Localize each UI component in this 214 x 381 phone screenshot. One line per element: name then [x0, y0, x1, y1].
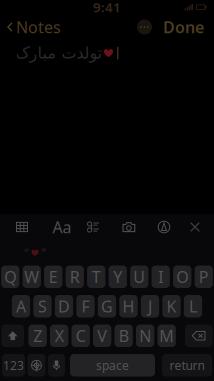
button[interactable]: Y — [109, 265, 127, 288]
staticText: ” — [41, 245, 45, 261]
staticText: Q — [4, 266, 16, 287]
staticText: “ — [24, 245, 28, 261]
staticText: space — [96, 357, 129, 373]
button[interactable]: Insert heart emoji — [6, 240, 64, 265]
button[interactable]: Q — [1, 265, 19, 288]
button[interactable]: E — [44, 265, 62, 288]
staticText: X — [55, 325, 64, 346]
staticText: F — [81, 296, 89, 317]
staticText: V — [97, 325, 107, 346]
staticText: Z — [33, 325, 42, 346]
button[interactable]: return — [162, 354, 212, 376]
button[interactable]: J — [141, 295, 159, 317]
staticText: A — [16, 296, 26, 317]
button[interactable]: S — [33, 295, 52, 317]
button[interactable]: K — [162, 295, 181, 317]
button[interactable]: space — [70, 354, 155, 376]
button[interactable]: A — [12, 295, 30, 317]
button[interactable]: I — [152, 265, 170, 288]
button[interactable]: G — [98, 295, 116, 317]
button[interactable]: X — [50, 324, 68, 347]
button[interactable]: Checklist — [80, 214, 106, 240]
staticText: J — [148, 296, 152, 317]
staticText: 123 — [3, 357, 24, 373]
button[interactable]: B — [114, 324, 133, 347]
button[interactable]: Shift — [1, 324, 24, 347]
staticText: T — [92, 266, 101, 287]
staticText: R — [70, 266, 80, 287]
staticText: G — [101, 296, 113, 317]
button[interactable]: R — [66, 265, 84, 288]
button[interactable]: U — [130, 265, 148, 288]
staticText: E — [49, 266, 58, 287]
button[interactable]: V — [93, 324, 111, 347]
button[interactable]: Markup — [152, 214, 176, 240]
staticText: C — [76, 325, 86, 346]
button[interactable]: Hide keyboard — [176, 214, 214, 240]
button[interactable]: L — [184, 295, 202, 317]
staticText: L — [189, 296, 197, 317]
button[interactable]: Table — [0, 214, 44, 240]
button[interactable]: Delete — [185, 324, 212, 347]
staticText: N — [139, 325, 151, 346]
staticText: تولدت مبارک — [15, 44, 101, 62]
button[interactable]: C — [71, 324, 90, 347]
staticText: 9:41 — [93, 0, 121, 16]
staticText: Aa — [52, 216, 71, 238]
button[interactable]: W — [23, 265, 41, 288]
button[interactable]: D — [55, 295, 73, 317]
staticText: W — [24, 266, 39, 287]
staticText: D — [58, 296, 70, 317]
staticText: Notes — [16, 16, 61, 38]
staticText: Done — [163, 16, 204, 38]
staticText: K — [166, 296, 176, 317]
staticText: U — [133, 266, 145, 287]
button[interactable]: H — [119, 295, 138, 317]
staticText: P — [199, 266, 209, 287]
staticText: S — [38, 296, 47, 317]
button[interactable]: Text format — [44, 214, 80, 240]
button[interactable]: O — [173, 265, 191, 288]
staticText: O — [176, 266, 188, 287]
staticText: M — [159, 325, 174, 346]
button[interactable]: T — [87, 265, 105, 288]
button[interactable]: P — [195, 265, 213, 288]
button[interactable]: 123 — [2, 354, 25, 376]
button[interactable]: N — [136, 324, 154, 347]
staticText: I — [158, 266, 163, 287]
button[interactable]: Dictation — [48, 354, 65, 376]
button[interactable]: Camera — [106, 214, 152, 240]
button[interactable]: Done — [159, 18, 214, 36]
staticText: return — [169, 357, 204, 373]
button[interactable]: Notes — [0, 18, 67, 36]
button[interactable]: More options — [137, 19, 152, 34]
staticText: B — [119, 325, 129, 346]
button[interactable]: F — [76, 295, 95, 317]
button[interactable]: Next keyboard — [27, 354, 45, 376]
staticText: H — [122, 296, 134, 317]
button[interactable]: M — [157, 324, 176, 347]
staticText: Y — [113, 266, 122, 287]
button[interactable]: Z — [28, 324, 47, 347]
